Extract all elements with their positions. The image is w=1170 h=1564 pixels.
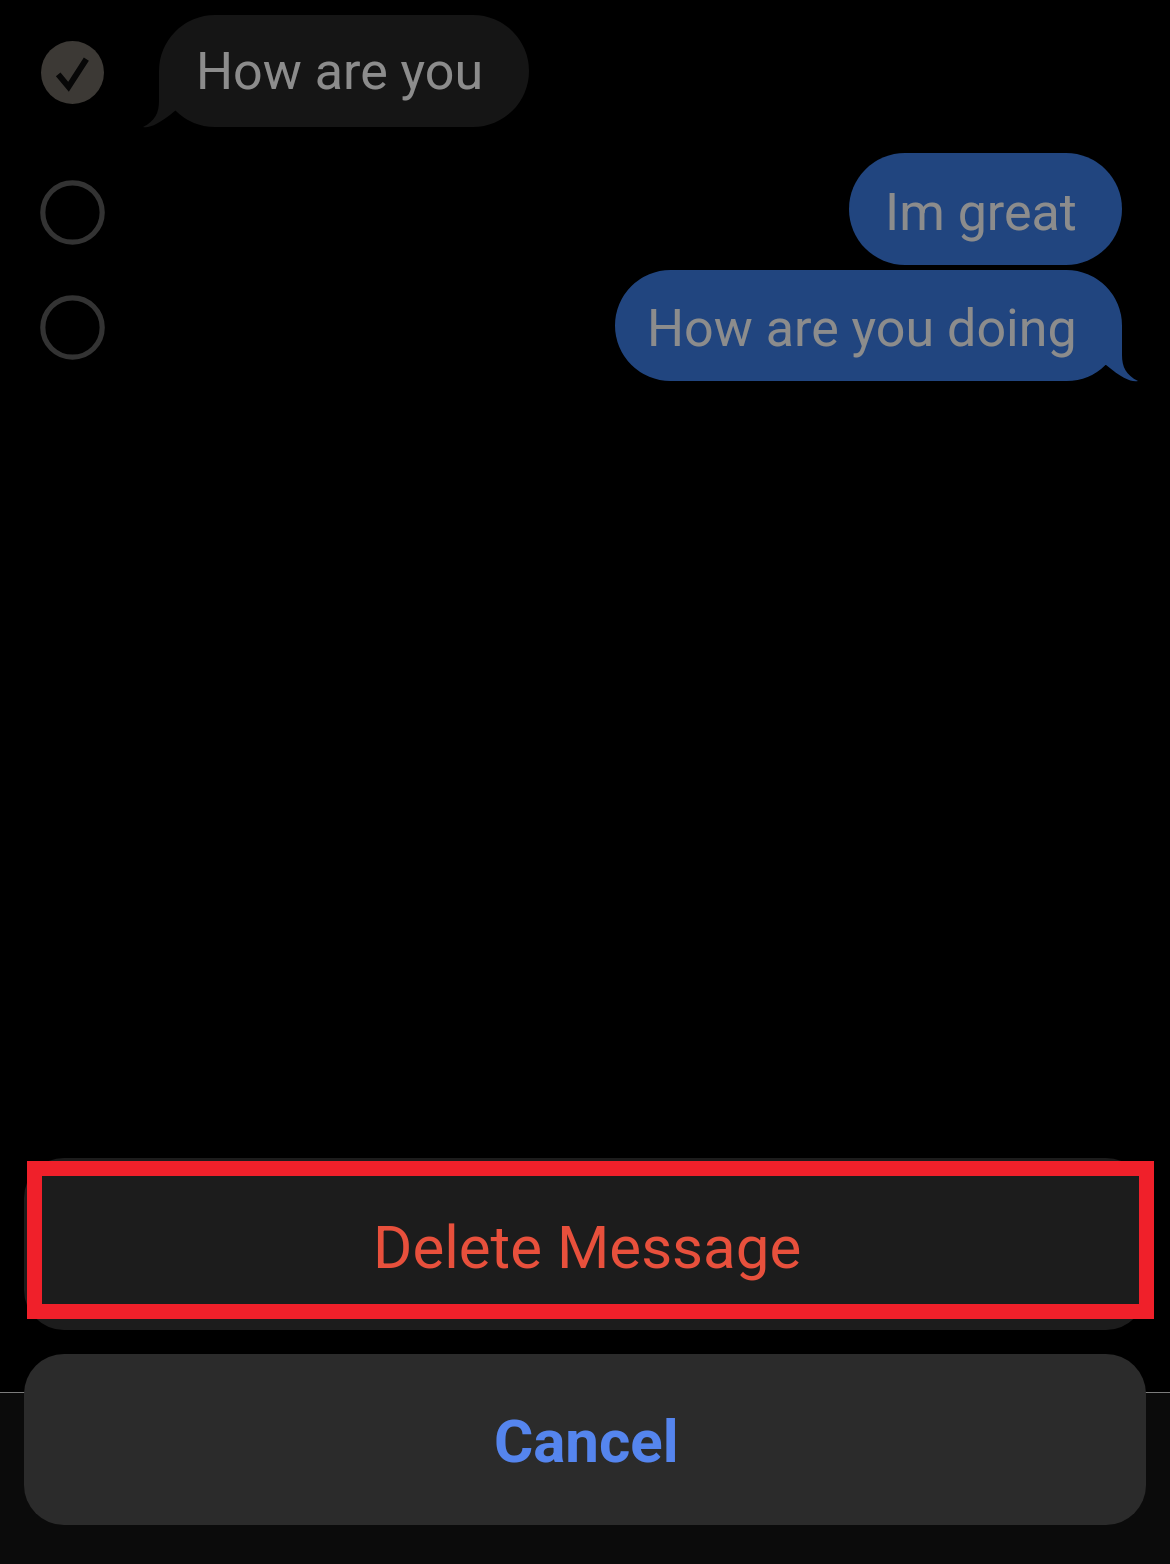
staticText: How are you doing xyxy=(647,298,1077,359)
staticText: Delete Message xyxy=(373,1212,802,1282)
button[interactable]: Delete Message xyxy=(24,1158,1146,1330)
staticText: Im great xyxy=(885,182,1077,243)
button[interactable]: Select message xyxy=(40,295,105,360)
button[interactable]: Message selected xyxy=(41,41,104,104)
button[interactable]: Select message xyxy=(40,180,105,245)
button[interactable]: How are you xyxy=(143,15,529,127)
button[interactable]: How are you doing xyxy=(615,270,1138,381)
staticText: How are you xyxy=(196,41,484,102)
staticText: Cancel xyxy=(494,1406,679,1476)
button[interactable]: Im great xyxy=(849,153,1122,265)
button[interactable]: Cancel xyxy=(24,1354,1146,1525)
